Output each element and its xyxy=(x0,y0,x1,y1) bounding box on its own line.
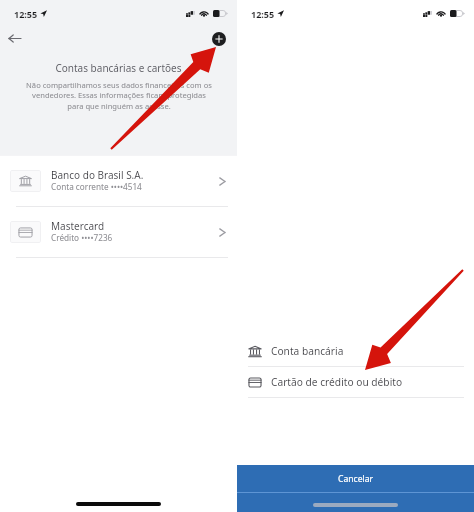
button[interactable]: Cartão de crédito ou débito xyxy=(237,367,474,397)
button[interactable]: Banco do Brasil S.A. xyxy=(0,156,237,206)
staticText: 12:55 xyxy=(251,8,275,20)
staticText: Contas bancárias e cartões xyxy=(55,61,182,75)
button[interactable]: Add account xyxy=(206,26,232,52)
button[interactable]: Conta bancária xyxy=(237,336,474,366)
staticText: Conta corrente ••••4514 xyxy=(51,181,142,192)
staticText: Cancelar xyxy=(338,473,374,485)
staticText: Banco do Brasil S.A. xyxy=(51,168,144,182)
staticText: Não compartilhamos seus dados financeiro… xyxy=(26,80,212,112)
staticText: 12:55 xyxy=(14,8,38,20)
button[interactable]: Mastercard xyxy=(0,207,237,257)
button[interactable]: Back xyxy=(1,25,27,51)
button[interactable]: Cancelar xyxy=(237,465,474,492)
staticText: Crédito ••••7236 xyxy=(51,232,113,243)
staticText: Conta bancária xyxy=(271,344,344,358)
staticText: Mastercard xyxy=(51,219,105,233)
staticText: Cartão de crédito ou débito xyxy=(271,375,403,389)
